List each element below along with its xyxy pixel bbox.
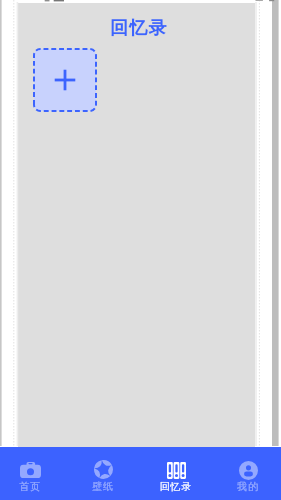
button[interactable]: 我的 <box>218 447 278 500</box>
staticText: 我的 <box>218 480 278 493</box>
staticText: 回忆录 <box>110 17 168 40</box>
button[interactable]: 添加回忆录 <box>33 48 97 112</box>
staticText: 首页 <box>0 480 60 493</box>
button[interactable]: 回忆录 <box>146 447 206 500</box>
button[interactable]: 首页 <box>0 447 60 500</box>
staticText: 壁纸 <box>73 480 133 493</box>
staticText: 回忆录 <box>146 480 206 493</box>
button[interactable]: 壁纸 <box>73 447 133 500</box>
